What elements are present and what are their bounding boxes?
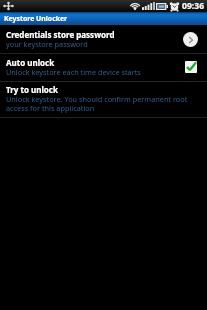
button[interactable]: Auto unlock, on — [184, 60, 198, 74]
staticText: Unlock keystore. You should confirm perm… — [6, 94, 198, 113]
button[interactable]: Auto unlock — [0, 54, 207, 81]
staticText: Keystore Unlocker — [4, 14, 68, 23]
button[interactable]: Credentials store password — [0, 25, 207, 53]
button[interactable]: Change credentials store password — [183, 32, 198, 47]
staticText: 09:36 — [182, 0, 205, 12]
staticText: Try to unlock — [6, 84, 58, 95]
staticText: Credentials store password — [6, 29, 115, 40]
staticText: your keystore password — [6, 39, 88, 49]
button[interactable]: Try to unlock — [0, 82, 207, 117]
staticText: Auto unlock — [6, 57, 55, 68]
staticText: Unlock keystore each time device starts — [6, 67, 141, 77]
